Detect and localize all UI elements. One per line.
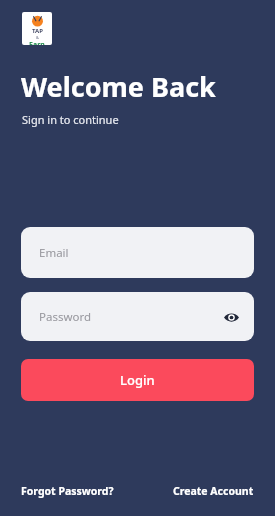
button[interactable]: Email xyxy=(21,227,254,278)
staticText: Login xyxy=(120,371,155,389)
button[interactable]: Create Account xyxy=(173,484,254,498)
staticText: Sign in to continue xyxy=(22,112,119,127)
button[interactable]: Show password xyxy=(216,302,246,332)
staticText: & xyxy=(36,35,39,40)
staticText: Welcome Back xyxy=(21,68,216,105)
button[interactable]: Forgot Password? xyxy=(21,484,114,498)
button[interactable]: Password xyxy=(21,292,254,341)
staticText: Email xyxy=(39,245,69,261)
button[interactable]: Login xyxy=(21,359,254,401)
staticText: Earn xyxy=(29,40,45,45)
staticText: Password xyxy=(39,309,92,325)
staticText: Create Account xyxy=(173,484,254,498)
staticText: TAP xyxy=(32,27,43,35)
staticText: Forgot Password? xyxy=(21,484,114,498)
button[interactable]: Tap and Earn logo xyxy=(22,12,52,45)
